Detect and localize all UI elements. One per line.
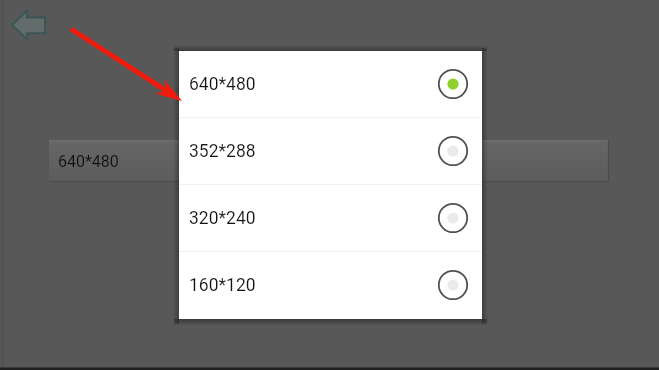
- staticText: 160*120: [189, 275, 438, 296]
- staticText: 640*480: [189, 74, 438, 95]
- button[interactable]: 320*240: [179, 185, 482, 251]
- button[interactable]: 640*480: [179, 51, 482, 117]
- button[interactable]: 352*288: [179, 118, 482, 184]
- staticText: 352*288: [189, 141, 438, 162]
- staticText: 640*480: [58, 152, 119, 171]
- button[interactable]: 160*120: [179, 252, 482, 318]
- staticText: 320*240: [189, 208, 438, 229]
- button[interactable]: 640*480: [48, 140, 609, 182]
- button[interactable]: Back: [11, 10, 46, 40]
